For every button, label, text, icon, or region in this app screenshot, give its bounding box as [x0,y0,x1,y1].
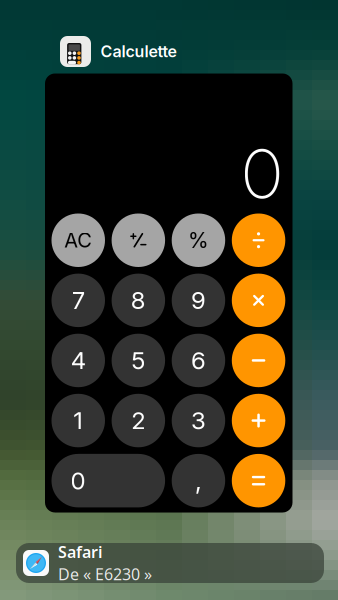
staticText: 0 [70,466,85,495]
staticText: 7 [72,286,85,315]
staticText: Calculette [100,42,176,61]
button[interactable]: AC [51,213,105,267]
button[interactable]: 3 [172,394,225,447]
button[interactable]: 7 [51,274,105,327]
staticText: 3 [191,406,206,435]
button[interactable]: 6 [172,334,225,387]
button[interactable] [232,213,285,267]
button[interactable] [232,334,285,387]
staticText: 1 [73,406,83,435]
button[interactable] [232,454,285,507]
button[interactable]: 0 [51,454,165,507]
staticText: De « E6230 » [58,563,152,585]
button[interactable]: 8 [112,274,165,327]
staticText: , [195,465,202,496]
staticText: 8 [131,286,146,315]
staticText: 2 [131,406,145,435]
staticText: 9 [191,286,206,315]
button[interactable] [232,394,285,447]
staticText: AC [64,228,92,252]
staticText: 6 [191,346,206,375]
button[interactable]: 4 [51,334,105,387]
button[interactable]: 5 [112,334,165,387]
button[interactable]: , [172,454,225,507]
staticText: 5 [131,346,145,375]
button[interactable] [112,213,165,267]
button[interactable] [232,274,285,327]
staticText: 0 [242,133,281,215]
staticText: 4 [71,346,86,375]
button[interactable]: 9 [172,274,225,327]
button[interactable]: % [172,213,225,267]
button[interactable]: 2 [112,394,165,447]
staticText: Safari [58,541,103,562]
button[interactable]: 1 [51,394,105,447]
button[interactable]: Safari [16,543,324,583]
staticText: % [188,227,209,253]
